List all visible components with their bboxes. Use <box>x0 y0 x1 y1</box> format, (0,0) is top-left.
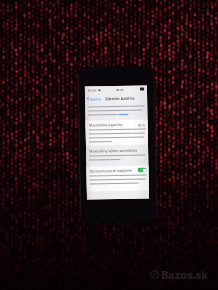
staticText: Zdravie batérie <box>105 96 135 101</box>
staticText: Optimalizované nabíjanie <box>89 168 132 173</box>
button[interactable]: Batéria <box>86 95 103 102</box>
staticText: O2-SK <box>88 88 97 93</box>
staticText: 09:26 <box>116 88 124 92</box>
button[interactable]: Optimalizované nabíjanie <box>86 165 149 192</box>
staticText: Maximálny výkon zariadenia <box>89 148 137 153</box>
button[interactable]: Optimalizovane nabijanie toggle <box>137 167 146 173</box>
staticText: Bazos.sk <box>161 267 209 282</box>
staticText: Maximálna kapacita <box>89 122 123 128</box>
staticText: Batéria <box>90 96 102 100</box>
staticText: 88 % <box>138 122 146 127</box>
button[interactable]: Maximálna kapacita <box>85 119 148 146</box>
